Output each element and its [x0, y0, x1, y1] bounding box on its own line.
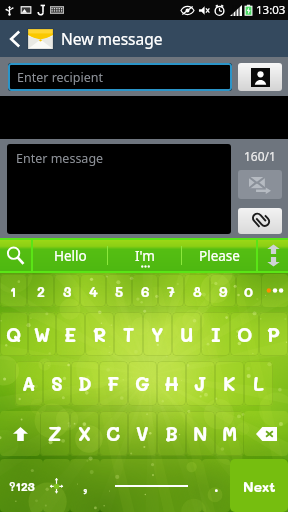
staticText: 5 [115, 282, 124, 300]
button[interactable]: D [71, 361, 99, 406]
button[interactable]: Z [40, 411, 70, 456]
button[interactable]: X [70, 411, 99, 456]
staticText: J [194, 371, 207, 396]
button[interactable]: J [186, 361, 215, 406]
staticText: X [78, 421, 91, 446]
button[interactable]: 9 [210, 274, 236, 307]
staticText: . [214, 476, 219, 495]
button[interactable]: 3 [54, 274, 80, 307]
staticText: 0 [244, 282, 254, 300]
button[interactable]: I [201, 312, 230, 356]
staticText: U [180, 322, 194, 347]
staticText: Y [151, 322, 164, 347]
button[interactable]: . [202, 459, 230, 512]
staticText: Next [243, 477, 276, 495]
staticText: 13:03 [256, 2, 286, 18]
staticText: 160/1 [244, 148, 276, 164]
button[interactable]: R [85, 312, 114, 356]
button[interactable]: T [114, 312, 143, 356]
staticText: 3 [63, 282, 72, 300]
staticText: H [164, 371, 180, 396]
staticText: 2 [37, 282, 45, 300]
button[interactable]: W [28, 312, 56, 356]
staticText: K [223, 371, 236, 396]
staticText: A [22, 371, 36, 396]
button[interactable]: 5 [106, 274, 132, 307]
staticText: Q [6, 322, 22, 347]
button[interactable]: Input options [43, 459, 70, 512]
button[interactable]: P [259, 312, 288, 356]
button[interactable]: B [157, 411, 186, 456]
button[interactable]: Expand suggestions [258, 240, 288, 271]
button[interactable]: Next [230, 459, 288, 512]
button[interactable]: H [157, 361, 186, 406]
staticText: P [267, 322, 280, 347]
button[interactable]: E [56, 312, 85, 356]
button[interactable]: A [15, 361, 43, 406]
button[interactable]: 1 [0, 274, 27, 307]
button[interactable]: Enter message [7, 144, 231, 234]
button[interactable]: 7 [158, 274, 184, 307]
button[interactable]: L [244, 361, 273, 406]
staticText: 7 [167, 282, 175, 300]
button[interactable]: Q [0, 312, 28, 356]
button[interactable]: Please [182, 240, 256, 271]
button[interactable]: Send [238, 170, 282, 199]
button[interactable]: U [172, 312, 201, 356]
staticText: 8 [193, 282, 202, 300]
staticText: 1 [10, 282, 17, 300]
staticText: Hello [54, 247, 87, 265]
button[interactable]: , [70, 459, 100, 512]
button[interactable]: Add contact [238, 63, 282, 91]
staticText: M [222, 421, 238, 446]
staticText: D [78, 371, 92, 396]
button[interactable]: Backspace [244, 411, 288, 456]
button[interactable]: S [43, 361, 71, 406]
staticText: C [106, 421, 121, 446]
button[interactable]: ?123 [0, 459, 43, 512]
staticText: I'm [135, 247, 155, 265]
staticText: E [64, 322, 77, 347]
button[interactable]: 2 [27, 274, 54, 307]
staticText: B [165, 421, 178, 446]
staticText: W [34, 322, 51, 347]
button[interactable]: I'm [108, 240, 182, 271]
button[interactable]: Emoji [262, 274, 288, 307]
staticText: V [136, 421, 149, 446]
staticText: N [193, 421, 208, 446]
button[interactable]: Hello [33, 240, 108, 271]
button[interactable]: V [128, 411, 157, 456]
staticText: L [253, 371, 265, 396]
button[interactable]: 6 [132, 274, 158, 307]
staticText: 6 [141, 282, 150, 300]
button[interactable]: F [99, 361, 128, 406]
button[interactable]: Space [100, 459, 202, 512]
staticText: F [107, 371, 120, 396]
staticText: Please [199, 247, 240, 265]
button[interactable]: Enter recipient [8, 63, 232, 91]
staticText: New message [61, 28, 163, 49]
staticText: Z [48, 421, 62, 446]
staticText: 4 [89, 282, 98, 300]
staticText: R [93, 322, 107, 347]
staticText: T [123, 322, 135, 347]
button[interactable]: 8 [184, 274, 210, 307]
button[interactable]: Search [0, 240, 31, 271]
button[interactable]: G [128, 361, 157, 406]
button[interactable]: C [99, 411, 128, 456]
staticText: , [83, 476, 88, 495]
button[interactable]: Shift [0, 411, 40, 456]
button[interactable]: 0 [236, 274, 262, 307]
staticText: Enter recipient [17, 69, 104, 86]
button[interactable]: Back [4, 24, 26, 54]
button[interactable]: Y [143, 312, 172, 356]
button[interactable]: O [230, 312, 259, 356]
button[interactable]: Attach [238, 208, 282, 234]
staticText: ?123 [9, 478, 35, 494]
button[interactable]: K [215, 361, 244, 406]
staticText: S [51, 371, 63, 396]
button[interactable]: 4 [80, 274, 106, 307]
button[interactable]: N [186, 411, 215, 456]
button[interactable]: M [215, 411, 244, 456]
staticText: O [237, 322, 253, 347]
